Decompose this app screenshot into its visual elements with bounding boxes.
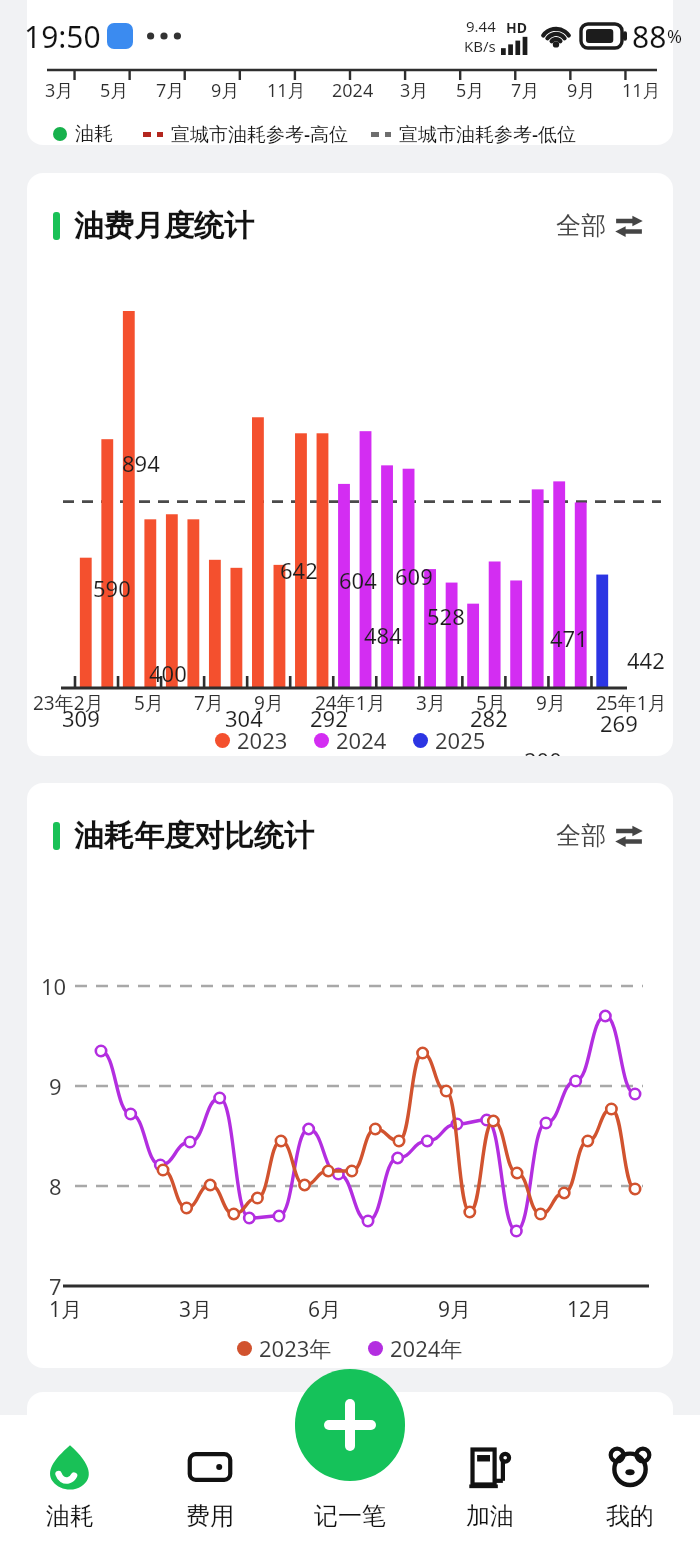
staticText: 9月 (536, 690, 566, 716)
staticText: 油费月度统计 (74, 207, 254, 245)
staticText: 2024 (332, 78, 374, 103)
staticText: 3月 (179, 1295, 213, 1324)
staticText: 11月 (622, 78, 661, 103)
staticText: 9.44 (466, 16, 496, 36)
staticText: 484 (364, 620, 402, 650)
staticText: 269 (600, 708, 638, 738)
staticText: 642 (280, 555, 318, 585)
staticText: % (667, 24, 682, 49)
other: WiFi (541, 21, 571, 51)
staticText: 528 (427, 601, 465, 631)
button[interactable]: 记一笔 (280, 1415, 420, 1555)
staticText: 9月 (438, 1295, 472, 1324)
staticText: 590 (93, 573, 131, 603)
staticText: 23年2月 (33, 690, 104, 716)
staticText: 88 (632, 16, 667, 57)
other: 切换视图 (615, 212, 643, 240)
staticText: 宣城市油耗参考-高位 (171, 121, 349, 145)
staticText: 3月 (400, 78, 429, 103)
staticText: 油耗 (75, 122, 113, 145)
other: 切换视图 (615, 822, 643, 850)
staticText: 9 (49, 1071, 62, 1101)
staticText: 3月 (416, 690, 446, 716)
staticText: HD (506, 18, 527, 37)
staticText: 11月 (267, 78, 306, 103)
staticText: 10 (41, 971, 67, 1001)
staticText: 304 (225, 703, 263, 733)
staticText: 宣城市油耗参考-低位 (399, 121, 577, 145)
staticText: 7月 (156, 78, 185, 103)
button[interactable]: 油耗 (0, 1415, 140, 1555)
staticText: 442 (627, 645, 665, 675)
staticText: 9月 (211, 78, 240, 103)
button[interactable]: 加油 (420, 1415, 560, 1555)
button[interactable]: 全部 (552, 816, 647, 855)
staticText: 全部 (556, 210, 606, 241)
staticText: 400 (149, 658, 187, 688)
staticText: 3月 (45, 78, 74, 103)
staticText: 我的 (606, 1501, 654, 1531)
staticText: 7月 (194, 690, 224, 716)
staticText: 2024 (336, 725, 387, 755)
button[interactable]: 我的 (560, 1415, 700, 1555)
staticText: 25年1月 (596, 690, 667, 716)
staticText: 7月 (511, 78, 540, 103)
staticText: 1月 (49, 1295, 83, 1324)
staticText: 全部 (556, 820, 606, 851)
staticText: 油耗 (46, 1501, 94, 1531)
staticText: 5月 (134, 690, 164, 716)
staticText: 加油 (466, 1501, 514, 1531)
button[interactable]: 3月 (27, 0, 673, 145)
button[interactable]: 油费月度统计 (27, 173, 673, 756)
staticText: 19:50 (24, 16, 101, 57)
staticText: 费用 (186, 1501, 234, 1531)
staticText: 5月 (476, 690, 506, 716)
staticText: 2023年 (259, 1333, 332, 1363)
staticText: 5月 (100, 78, 129, 103)
staticText: 309 (62, 703, 100, 733)
button[interactable]: 油耗年度对比统计 (27, 783, 673, 1368)
staticText: 471 (550, 623, 588, 653)
staticText: 24年1月 (315, 690, 386, 716)
staticText: 292 (310, 703, 348, 733)
staticText: 油耗年度对比统计 (74, 817, 314, 855)
staticText: 9月 (254, 690, 284, 716)
staticText: 894 (122, 448, 160, 478)
staticText: 604 (339, 565, 377, 595)
staticText: 609 (395, 561, 433, 591)
staticText: 282 (470, 703, 508, 733)
staticText: 2025 (435, 725, 486, 755)
button[interactable] (27, 1392, 673, 1532)
button[interactable]: 全部 (552, 206, 647, 245)
staticText: KB/s (464, 36, 496, 56)
staticText: 5月 (456, 78, 485, 103)
staticText: 200 (524, 745, 562, 756)
staticText: 6月 (308, 1295, 342, 1324)
staticText: 记一笔 (314, 1501, 386, 1531)
staticText: 8 (49, 1171, 62, 1201)
staticText: 2024年 (390, 1333, 463, 1363)
staticText: 12月 (567, 1295, 613, 1324)
staticText: 2023 (237, 725, 288, 755)
staticText: 9月 (567, 78, 596, 103)
button[interactable]: 费用 (140, 1415, 280, 1555)
button[interactable]: 记一笔 (295, 1369, 405, 1481)
staticText: 7 (49, 1271, 62, 1301)
